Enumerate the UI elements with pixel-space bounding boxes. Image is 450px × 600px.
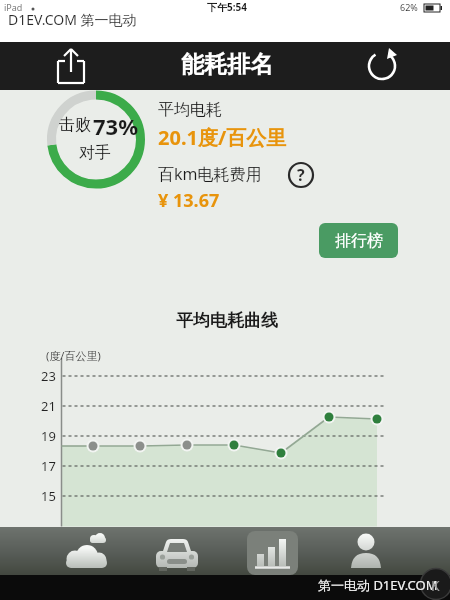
staticText: K (431, 576, 440, 595)
button[interactable] (62, 531, 114, 575)
button[interactable] (52, 48, 90, 86)
staticText: 23 (41, 367, 56, 385)
button[interactable] (247, 531, 298, 575)
button[interactable]: 排行榜 (319, 223, 398, 258)
staticText: iPad (4, 1, 23, 13)
button[interactable] (340, 531, 392, 575)
staticText: 击败 (59, 115, 91, 135)
button[interactable] (287, 161, 315, 189)
staticText: 排行榜 (335, 231, 383, 251)
staticText: 62% (400, 1, 418, 13)
staticText: ¥ 13.67 (158, 188, 220, 213)
staticText: 下午5:54 (207, 0, 247, 14)
staticText: 对手 (79, 143, 111, 163)
staticText: D1EV.COM 第一电动 (8, 10, 137, 29)
staticText: 第一电动 D1EV.COM (318, 576, 438, 594)
staticText: 20.1度/百公里 (158, 124, 287, 151)
staticText: (度/百公里) (46, 348, 101, 363)
button[interactable] (364, 48, 402, 86)
staticText: 17 (41, 457, 56, 475)
staticText: 19 (41, 427, 56, 445)
staticText: 能耗排名 (181, 50, 273, 79)
staticText: 21 (41, 397, 56, 415)
button[interactable] (151, 531, 203, 575)
staticText: 73% (93, 111, 139, 141)
staticText: 平均电耗 (158, 100, 222, 120)
staticText: ? (297, 164, 305, 186)
staticText: 百km电耗费用 (158, 163, 262, 185)
staticText: 平均电耗曲线 (176, 310, 278, 331)
staticText: 15 (41, 487, 56, 505)
